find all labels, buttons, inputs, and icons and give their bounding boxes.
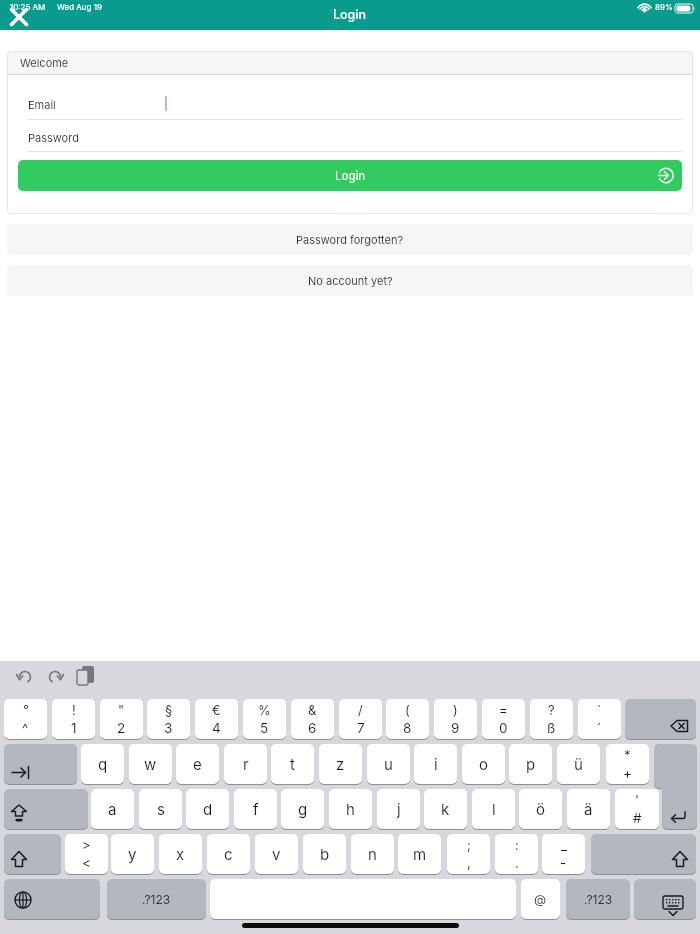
- button[interactable]: [107, 879, 206, 919]
- button[interactable]: n: [351, 834, 394, 874]
- button[interactable]: §: [147, 699, 190, 739]
- button[interactable]: e: [176, 744, 219, 784]
- button[interactable]: ": [100, 699, 143, 739]
- button[interactable]: &: [291, 699, 334, 739]
- button[interactable]: ü: [557, 744, 600, 784]
- button[interactable]: d: [186, 789, 229, 829]
- staticText: a: [108, 800, 117, 818]
- staticText: Password forgotten?: [296, 233, 404, 246]
- staticText: ü: [574, 755, 583, 773]
- button[interactable]: ': [615, 789, 659, 829]
- staticText: y: [128, 845, 137, 863]
- button[interactable]: [8, 6, 30, 28]
- button[interactable]: Password forgotten?: [7, 224, 693, 255]
- staticText: Wed Aug 19: [57, 2, 102, 12]
- staticText: :: [515, 837, 519, 853]
- button[interactable]: [521, 879, 560, 919]
- staticText: _: [561, 837, 567, 853]
- button[interactable]: m: [398, 834, 441, 874]
- staticText: b: [320, 845, 330, 863]
- button[interactable]: [4, 789, 88, 829]
- staticText: ": [118, 702, 125, 718]
- button[interactable]: ö: [519, 789, 562, 829]
- button[interactable]: No account yet?: [7, 265, 693, 296]
- button[interactable]: (: [386, 699, 429, 739]
- button[interactable]: °: [4, 699, 47, 739]
- staticText: No account yet?: [308, 274, 393, 287]
- staticText: Password: [28, 131, 79, 144]
- staticText: v: [272, 845, 281, 863]
- button[interactable]: h: [329, 789, 372, 829]
- staticText: @: [534, 892, 547, 907]
- staticText: &: [308, 702, 317, 718]
- button[interactable]: t: [271, 744, 314, 784]
- staticText: ä: [584, 800, 593, 818]
- button[interactable]: w: [129, 744, 172, 784]
- staticText: 3: [164, 720, 173, 736]
- button[interactable]: x: [159, 834, 202, 874]
- button[interactable]: *: [606, 744, 649, 784]
- staticText: ,: [467, 855, 471, 871]
- button[interactable]: v: [255, 834, 298, 874]
- button[interactable]: z: [319, 744, 362, 784]
- button[interactable]: b: [303, 834, 346, 874]
- staticText: j: [397, 800, 401, 818]
- button[interactable]: :: [495, 834, 538, 874]
- button[interactable]: =: [482, 699, 525, 739]
- staticText: s: [157, 800, 165, 818]
- staticText: +: [623, 765, 632, 781]
- button[interactable]: /: [339, 699, 382, 739]
- staticText: h: [346, 800, 355, 818]
- button[interactable]: f: [234, 789, 277, 829]
- staticText: l: [492, 800, 496, 818]
- button[interactable]: Login: [18, 160, 682, 191]
- button[interactable]: [4, 744, 77, 784]
- button[interactable]: ?: [530, 699, 573, 739]
- button[interactable]: _: [542, 834, 585, 874]
- button[interactable]: [634, 879, 696, 919]
- button[interactable]: [625, 699, 696, 739]
- button[interactable]: [591, 834, 696, 874]
- button[interactable]: [566, 879, 630, 919]
- staticText: m: [413, 845, 427, 863]
- button[interactable]: ): [434, 699, 477, 739]
- button[interactable]: >: [65, 834, 108, 874]
- staticText: Email: [28, 98, 56, 111]
- staticText: w: [144, 755, 157, 773]
- staticText: ;: [467, 837, 471, 853]
- button[interactable]: o: [462, 744, 505, 784]
- button[interactable]: l: [472, 789, 515, 829]
- button[interactable]: k: [424, 789, 467, 829]
- staticText: !: [72, 702, 76, 718]
- button[interactable]: €: [195, 699, 238, 739]
- button[interactable]: ä: [567, 789, 610, 829]
- button[interactable]: p: [509, 744, 552, 784]
- button[interactable]: [4, 834, 61, 874]
- staticText: Login: [335, 169, 366, 183]
- button[interactable]: u: [367, 744, 410, 784]
- button[interactable]: y: [111, 834, 154, 874]
- button[interactable]: j: [377, 789, 420, 829]
- staticText: 0: [499, 720, 508, 736]
- staticText: 4: [212, 720, 221, 736]
- button[interactable]: c: [207, 834, 250, 874]
- button[interactable]: ;: [447, 834, 490, 874]
- button[interactable]: %: [243, 699, 286, 739]
- button[interactable]: s: [139, 789, 182, 829]
- button[interactable]: g: [281, 789, 324, 829]
- staticText: i: [434, 755, 438, 773]
- staticText: g: [298, 800, 308, 818]
- staticText: k: [441, 800, 450, 818]
- button[interactable]: i: [414, 744, 457, 784]
- button[interactable]: a: [91, 789, 134, 829]
- button[interactable]: `: [578, 699, 621, 739]
- button[interactable]: q: [81, 744, 124, 784]
- staticText: <: [82, 855, 91, 871]
- staticText: (: [405, 702, 410, 718]
- button[interactable]: !: [52, 699, 95, 739]
- button[interactable]: r: [224, 744, 267, 784]
- button[interactable]: [4, 879, 100, 919]
- staticText: t: [290, 755, 295, 773]
